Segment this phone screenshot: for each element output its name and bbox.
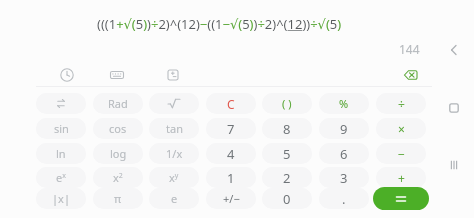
staticText: ×: [398, 121, 405, 137]
button[interactable]: Square root: [149, 93, 199, 114]
staticText: 1: [227, 169, 235, 187]
button[interactable]: x2: [93, 167, 143, 188]
staticText: 6: [340, 145, 348, 163]
button[interactable]: sin: [36, 118, 86, 139]
staticText: 0: [283, 190, 291, 208]
button[interactable]: ex: [36, 167, 86, 188]
staticText: 3: [340, 169, 348, 187]
button[interactable]: 9: [319, 118, 369, 139]
staticText: 7: [227, 120, 235, 138]
button[interactable]: ÷: [376, 93, 426, 114]
button[interactable]: 7: [206, 118, 256, 139]
staticText: C: [227, 96, 235, 112]
staticText: 144: [399, 41, 420, 57]
button[interactable]: Swap units: [36, 93, 86, 114]
button[interactable]: xy: [149, 167, 199, 188]
button[interactable]: %: [319, 93, 369, 114]
button[interactable]: 6: [319, 143, 369, 164]
staticText: 1/x: [166, 146, 183, 161]
button[interactable]: 1/x: [149, 143, 199, 164]
staticText: +/−: [223, 191, 240, 206]
button[interactable]: C: [206, 93, 256, 114]
staticText: x2: [113, 170, 123, 185]
button[interactable]: Keypad: [106, 64, 128, 86]
staticText: cos: [109, 121, 127, 136]
staticText: 4: [227, 145, 235, 163]
button[interactable]: History: [56, 64, 78, 86]
staticText: xy: [169, 170, 179, 185]
button[interactable]: 1: [206, 167, 256, 188]
staticText: 5: [283, 145, 291, 163]
button[interactable]: 5: [262, 143, 312, 164]
staticText: 9: [340, 120, 348, 138]
staticText: ÷: [398, 96, 405, 112]
button[interactable]: π: [93, 188, 143, 209]
button[interactable]: ×: [376, 118, 426, 139]
button[interactable]: .: [319, 188, 369, 209]
button[interactable]: Number format: [162, 64, 184, 86]
button[interactable]: 3: [319, 167, 369, 188]
button[interactable]: Recents: [442, 153, 466, 177]
button[interactable]: +: [376, 167, 426, 188]
staticText: −: [398, 146, 405, 162]
staticText: ln: [56, 146, 66, 161]
button[interactable]: Back: [442, 38, 466, 62]
button[interactable]: tan: [149, 118, 199, 139]
staticText: π: [114, 191, 122, 206]
button[interactable]: +/−: [206, 188, 256, 209]
button[interactable]: Rad: [93, 93, 143, 114]
staticText: sin: [54, 121, 69, 136]
staticText: tan: [166, 121, 183, 136]
button[interactable]: −: [376, 143, 426, 164]
staticText: ex: [56, 170, 66, 185]
staticText: +: [398, 170, 405, 186]
button[interactable]: Home: [442, 96, 466, 120]
staticText: |x|: [52, 191, 70, 206]
button[interactable]: Backspace: [400, 64, 422, 86]
staticText: log: [110, 146, 127, 161]
button[interactable]: 2: [262, 167, 312, 188]
button[interactable]: ln: [36, 143, 86, 164]
button[interactable]: log: [93, 143, 143, 164]
staticText: (((1+√(5))÷2)^(12)−((1−√(5))÷2)^(12))÷√(…: [97, 15, 342, 33]
staticText: .: [342, 190, 346, 208]
button[interactable]: e: [149, 188, 199, 209]
staticText: e: [171, 191, 178, 206]
staticText: 2: [283, 169, 291, 187]
button[interactable]: |x|: [36, 188, 86, 209]
button[interactable]: ( ): [262, 93, 312, 114]
button[interactable]: 4: [206, 143, 256, 164]
staticText: 8: [283, 120, 291, 138]
staticText: Rad: [108, 96, 128, 111]
button[interactable]: 0: [262, 188, 312, 209]
staticText: ( ): [282, 96, 292, 111]
button[interactable]: [373, 187, 429, 210]
button[interactable]: cos: [93, 118, 143, 139]
staticText: %: [339, 96, 349, 111]
button[interactable]: 8: [262, 118, 312, 139]
